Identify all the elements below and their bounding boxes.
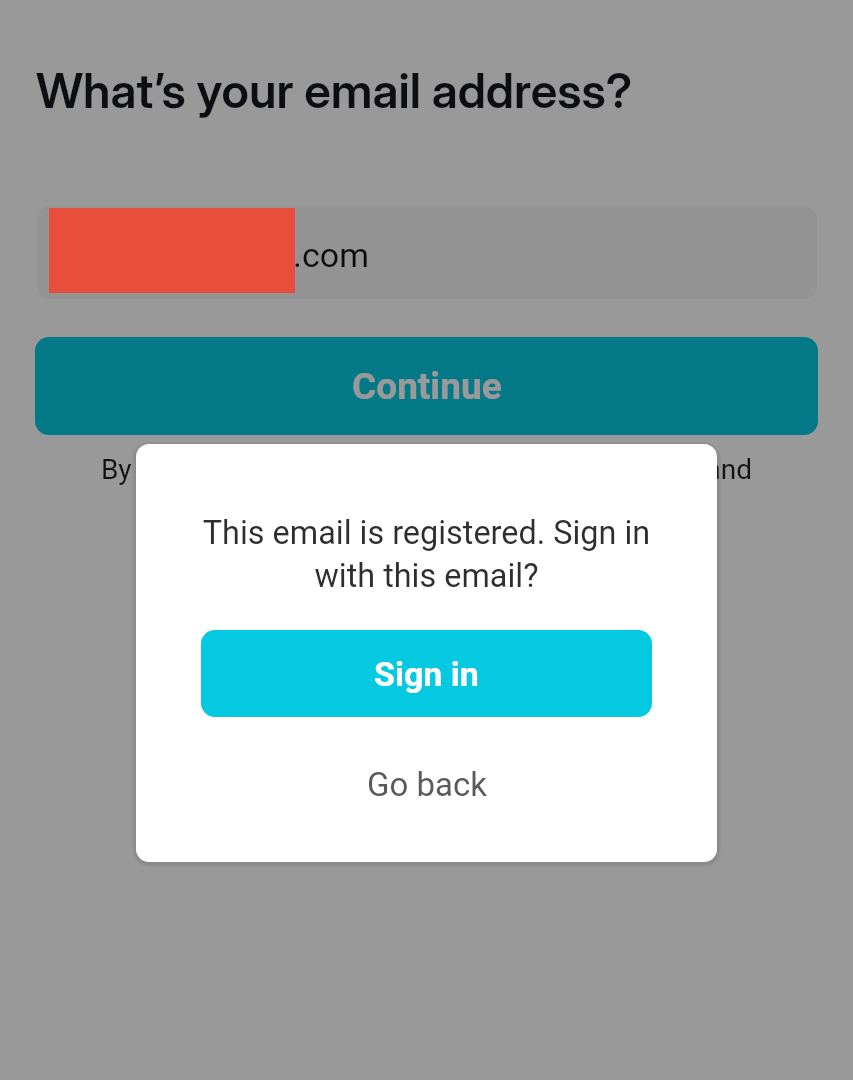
staticText: This email is registered. Sign in with t…	[136, 514, 717, 595]
staticText: Sign in	[374, 654, 479, 694]
button[interactable]: Sign in	[201, 630, 652, 717]
staticText: Go back	[367, 765, 487, 804]
staticText: What’s your email address?	[36, 61, 633, 119]
button[interactable]: Email address field	[37, 206, 817, 299]
staticText: .com	[293, 235, 369, 275]
button[interactable]: Dismiss dialog	[0, 0, 853, 1080]
button[interactable]: Go back	[201, 749, 652, 819]
button[interactable]: Continue	[35, 337, 818, 435]
staticText: By continuing, you agree to our Terms of…	[0, 453, 853, 486]
staticText: Continue	[352, 365, 502, 408]
